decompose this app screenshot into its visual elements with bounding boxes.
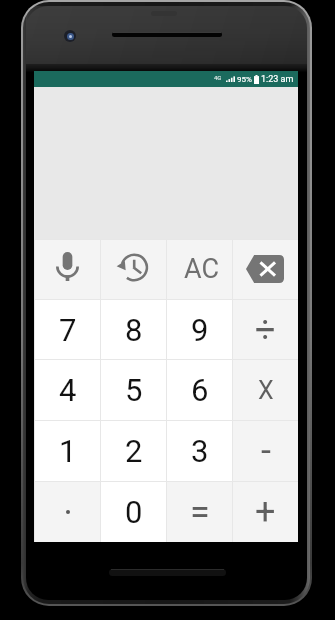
staticText: X: [258, 376, 274, 405]
staticText: 7: [59, 312, 77, 348]
staticText: AC: [184, 253, 220, 285]
button[interactable]: 2: [101, 421, 166, 481]
staticText: ÷: [255, 309, 276, 351]
staticText: 4: [59, 372, 77, 408]
button[interactable]: 6: [167, 360, 232, 420]
button[interactable]: 8: [101, 300, 166, 359]
staticText: 95%: [237, 75, 252, 84]
button[interactable]: 7: [35, 300, 100, 359]
staticText: 4G: [214, 74, 222, 81]
button[interactable]: -: [233, 421, 298, 481]
staticText: -: [261, 430, 271, 472]
button[interactable]: AC: [167, 240, 232, 299]
staticText: 0: [125, 494, 143, 530]
button[interactable]: Voice input: [35, 240, 100, 299]
button[interactable]: ÷: [233, 300, 298, 359]
button[interactable]: 5: [101, 360, 166, 420]
button[interactable]: 4: [35, 360, 100, 420]
button[interactable]: Decimal point: [35, 482, 100, 542]
button[interactable]: 3: [167, 421, 232, 481]
staticText: 8: [125, 312, 143, 348]
button[interactable]: 0: [101, 482, 166, 542]
button[interactable]: History: [101, 240, 166, 299]
button[interactable]: 9: [167, 300, 232, 359]
staticText: 9: [191, 312, 209, 348]
staticText: 1:23 am: [261, 74, 294, 85]
button[interactable]: 1: [35, 421, 100, 481]
staticText: 3: [191, 433, 209, 469]
button[interactable]: Backspace: [233, 240, 298, 299]
staticText: +: [255, 491, 276, 533]
button[interactable]: X: [233, 360, 298, 420]
button[interactable]: =: [167, 482, 232, 542]
staticText: 5: [125, 372, 143, 408]
staticText: =: [190, 491, 210, 533]
button[interactable]: +: [233, 482, 298, 542]
staticText: 6: [191, 372, 209, 408]
staticText: 1: [59, 433, 77, 469]
staticText: 2: [125, 433, 143, 469]
